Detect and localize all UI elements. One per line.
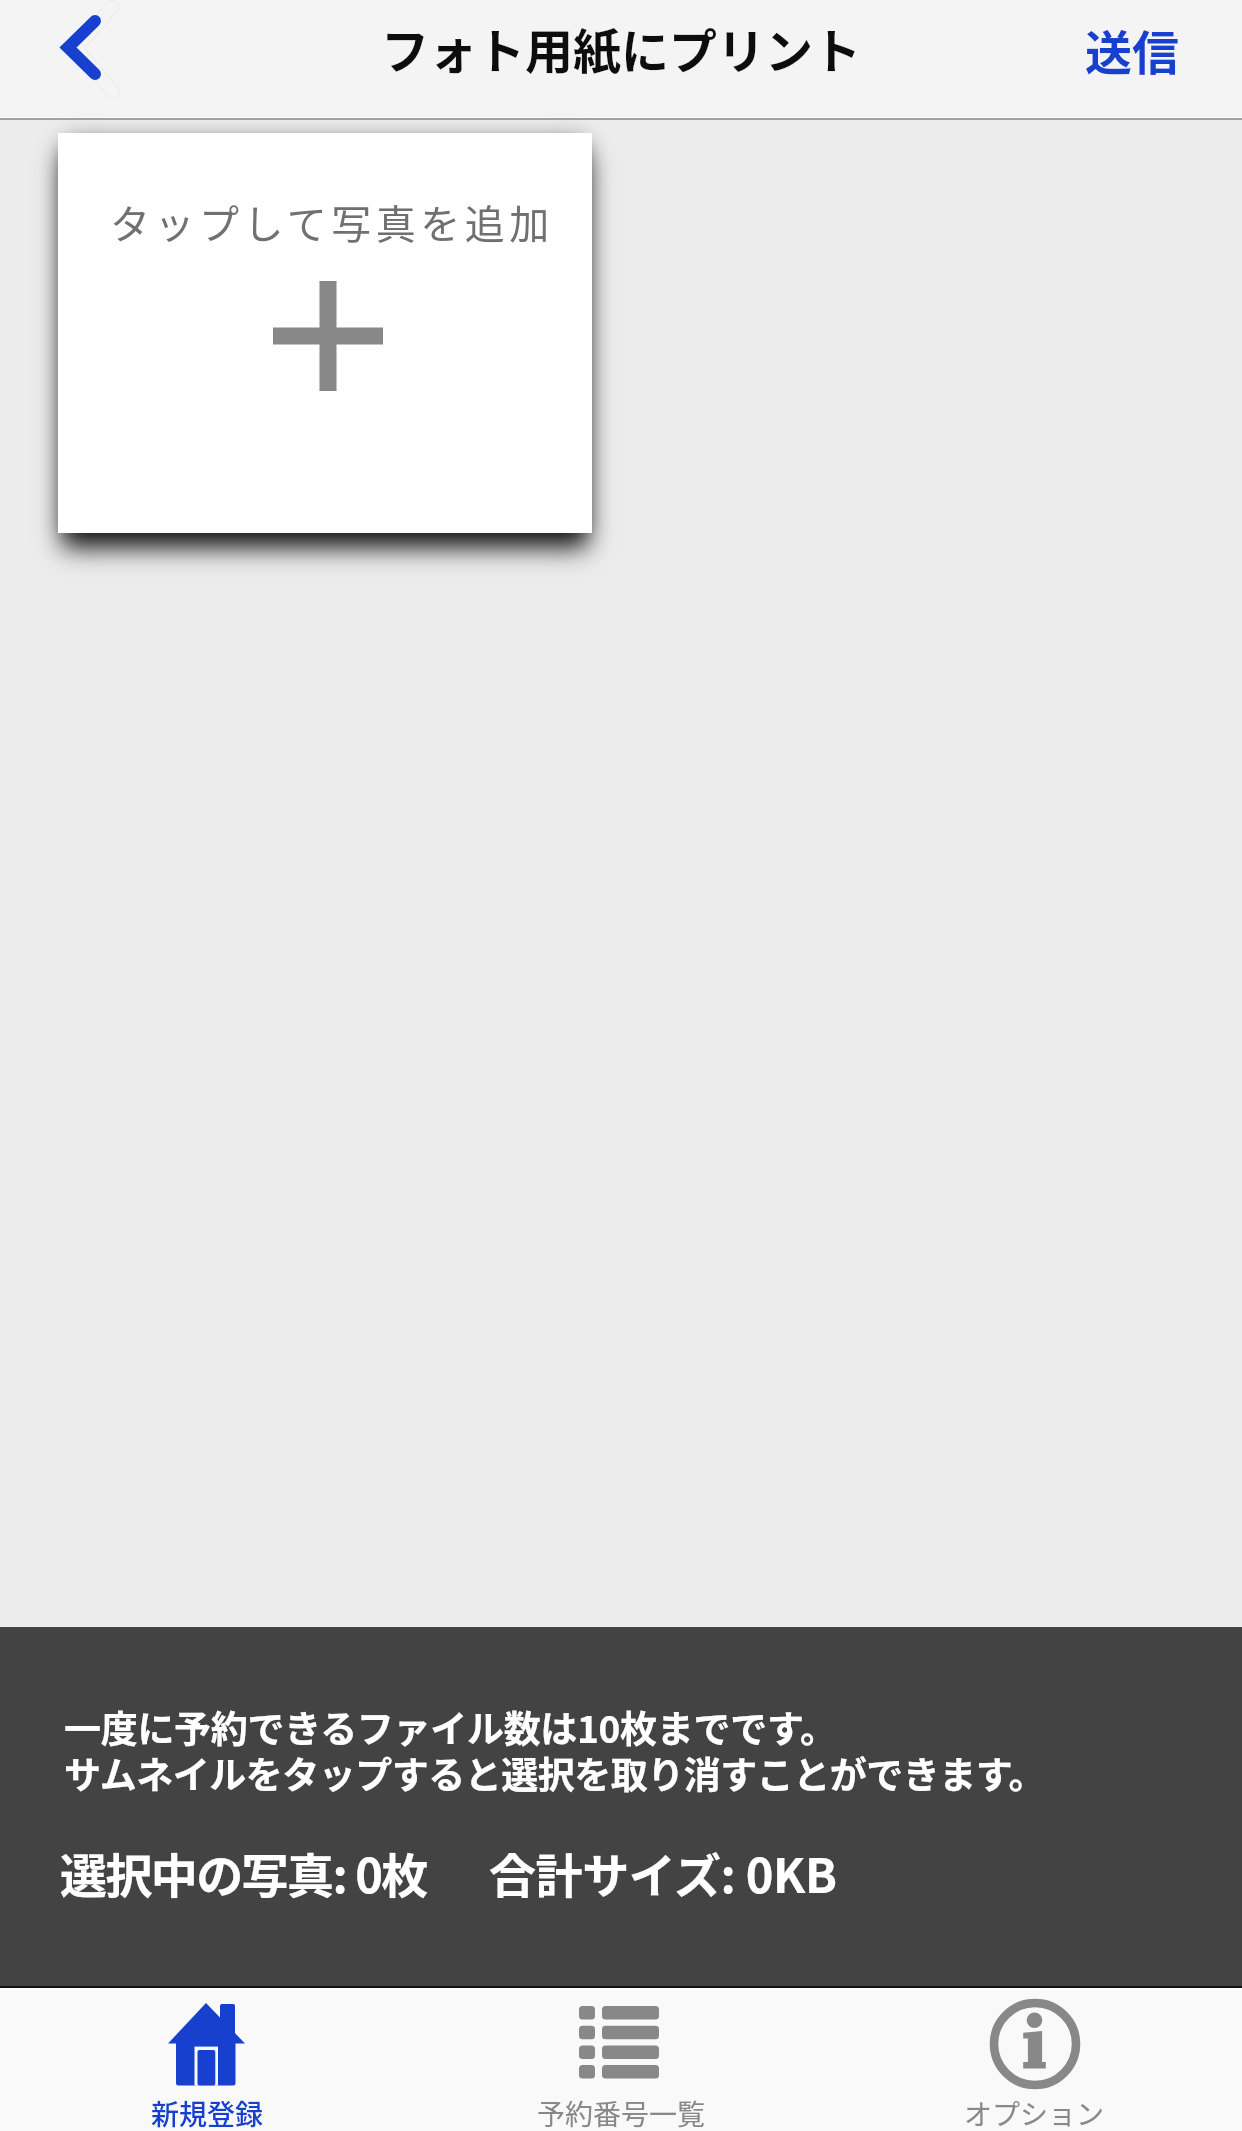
staticText: サムネイルをタップすると選択を取り消すことができます。 bbox=[64, 1746, 1046, 1800]
button[interactable]: オプション bbox=[828, 1987, 1242, 2131]
button[interactable]: 予約番号一覧 bbox=[414, 1987, 828, 2131]
button[interactable]: Back bbox=[10, 0, 130, 118]
staticText: タップして写真を追加 bbox=[110, 193, 554, 251]
staticText: 選択中の写真: 0枚 bbox=[60, 1838, 427, 1906]
staticText: 合計サイズ: 0KB bbox=[489, 1838, 837, 1906]
staticText: フォト用紙にプリント bbox=[0, 13, 1242, 83]
staticText: 送信 bbox=[1085, 15, 1179, 83]
staticText: 予約番号一覧 bbox=[537, 2093, 706, 2131]
staticText: オプション bbox=[964, 2093, 1105, 2131]
staticText: 一度に予約できるファイル数は10枚までです。 bbox=[64, 1700, 837, 1754]
button[interactable]: タップして写真を追加 bbox=[58, 133, 592, 533]
staticText: 新規登録 bbox=[151, 2093, 264, 2131]
button[interactable]: 新規登録 bbox=[0, 1987, 414, 2131]
button[interactable]: 送信 bbox=[1047, 0, 1217, 108]
